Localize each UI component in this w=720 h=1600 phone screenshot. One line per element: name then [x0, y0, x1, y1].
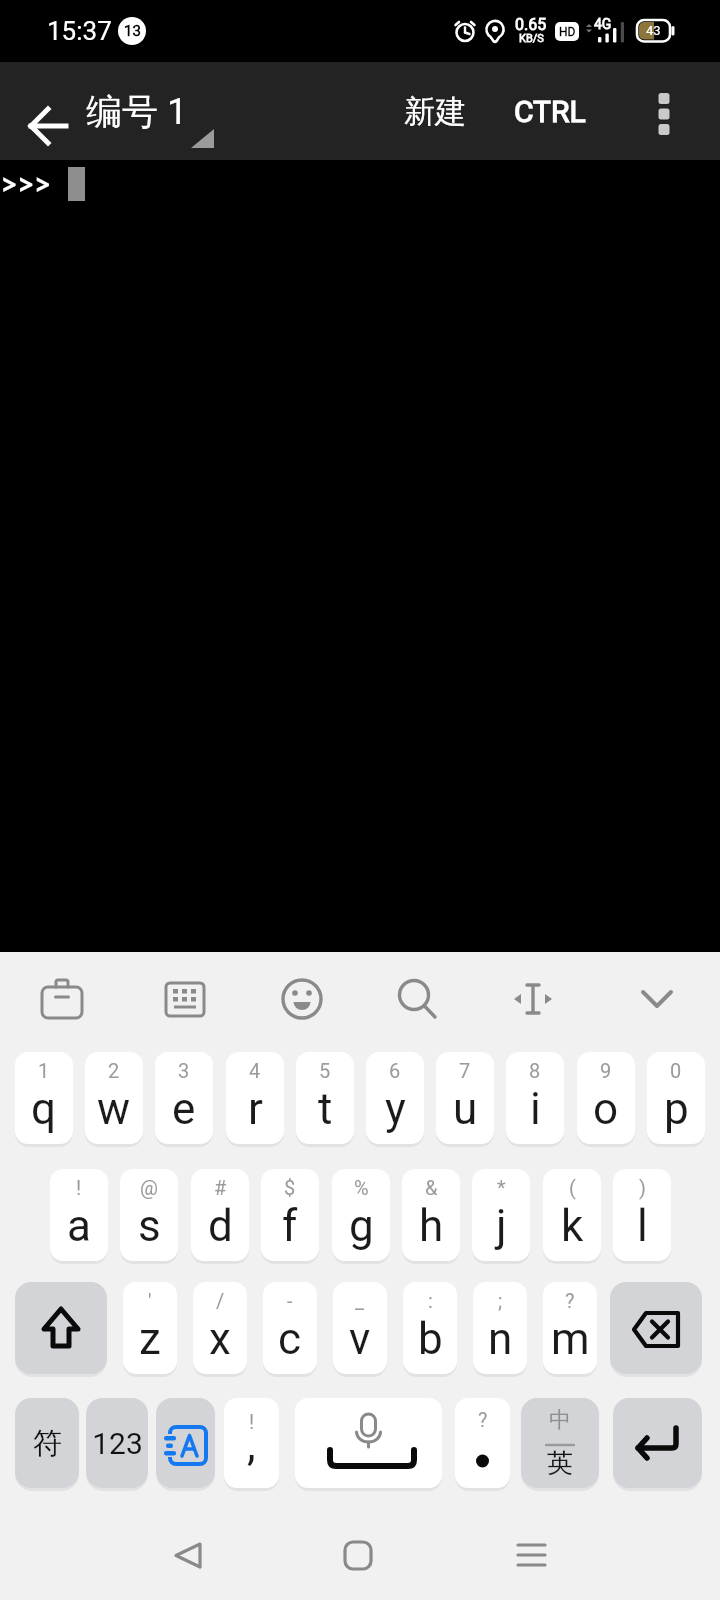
button[interactable]: [328, 1525, 388, 1585]
staticText: (: [569, 1176, 576, 1199]
staticText: $: [284, 1176, 296, 1199]
button[interactable]: 123: [86, 1398, 148, 1488]
staticText: h: [419, 1200, 444, 1252]
staticText: _: [355, 1289, 365, 1312]
staticText: CTRL: [514, 94, 586, 129]
staticText: 123: [92, 1426, 143, 1461]
staticText: 13: [124, 22, 141, 40]
button[interactable]: [32, 971, 92, 1027]
staticText: 英: [547, 1447, 573, 1480]
button[interactable]: *: [472, 1169, 530, 1261]
staticText: 2: [108, 1059, 120, 1082]
button[interactable]: 5: [296, 1052, 354, 1144]
staticText: c: [278, 1313, 302, 1365]
staticText: 中: [549, 1406, 571, 1434]
button[interactable]: [272, 971, 332, 1027]
button[interactable]: 1: [15, 1052, 73, 1144]
staticText: u: [453, 1083, 478, 1135]
button[interactable]: 2: [85, 1052, 143, 1144]
button[interactable]: [501, 1525, 561, 1585]
staticText: !: [76, 1176, 82, 1199]
staticText: k: [561, 1200, 584, 1252]
staticText: 0: [670, 1059, 682, 1082]
staticText: y: [385, 1083, 406, 1135]
button[interactable]: 新建: [384, 76, 486, 146]
staticText: ?: [478, 1408, 488, 1431]
button[interactable]: [158, 1525, 218, 1585]
button[interactable]: #: [191, 1169, 249, 1261]
staticText: i: [530, 1083, 541, 1135]
button[interactable]: _: [333, 1282, 387, 1374]
button[interactable]: ?: [543, 1282, 597, 1374]
button[interactable]: &: [402, 1169, 460, 1261]
staticText: t: [318, 1083, 333, 1135]
button[interactable]: 4: [226, 1052, 284, 1144]
button[interactable]: [613, 1398, 702, 1488]
staticText: l: [637, 1200, 648, 1252]
staticText: 新建: [404, 92, 466, 131]
button[interactable]: %: [332, 1169, 390, 1261]
button[interactable]: 8: [506, 1052, 564, 1144]
staticText: -: [287, 1289, 293, 1312]
staticText: n: [488, 1313, 513, 1365]
button[interactable]: [14, 77, 82, 145]
button[interactable]: /: [193, 1282, 247, 1374]
staticText: HD: [559, 25, 576, 39]
staticText: 4G: [594, 16, 612, 32]
button[interactable]: [387, 971, 447, 1027]
staticText: KB/S: [519, 32, 544, 45]
button[interactable]: [15, 1282, 107, 1374]
staticText: p: [664, 1083, 689, 1135]
staticText: v: [349, 1313, 371, 1365]
button[interactable]: 3: [155, 1052, 213, 1144]
staticText: 1: [38, 1059, 50, 1082]
button[interactable]: >>>: [0, 160, 720, 952]
button[interactable]: @: [120, 1169, 178, 1261]
staticText: ): [639, 1176, 646, 1199]
staticText: r: [248, 1083, 263, 1135]
staticText: %: [354, 1176, 369, 1199]
staticText: q: [31, 1083, 57, 1135]
staticText: w: [97, 1083, 131, 1135]
button[interactable]: ?: [455, 1398, 510, 1488]
staticText: d: [208, 1200, 233, 1252]
staticText: o: [593, 1083, 619, 1135]
staticText: a: [67, 1200, 91, 1252]
button[interactable]: ): [613, 1169, 671, 1261]
button[interactable]: [503, 971, 563, 1027]
button[interactable]: !: [224, 1398, 279, 1488]
button[interactable]: 7: [436, 1052, 494, 1144]
button[interactable]: [295, 1398, 442, 1488]
button[interactable]: !: [50, 1169, 108, 1261]
button[interactable]: CTRL: [496, 76, 604, 146]
button[interactable]: ': [123, 1282, 177, 1374]
button[interactable]: [634, 76, 694, 146]
button[interactable]: 9: [577, 1052, 635, 1144]
button[interactable]: [627, 971, 687, 1027]
staticText: ': [148, 1289, 152, 1312]
button[interactable]: $: [261, 1169, 319, 1261]
button[interactable]: (: [543, 1169, 601, 1261]
staticText: 6: [389, 1059, 401, 1082]
button[interactable]: [156, 1398, 215, 1488]
button[interactable]: -: [263, 1282, 317, 1374]
button[interactable]: 0: [647, 1052, 705, 1144]
button[interactable]: 6: [366, 1052, 424, 1144]
button[interactable]: 中: [521, 1398, 599, 1488]
staticText: /: [216, 1289, 225, 1312]
staticText: 符: [33, 1425, 62, 1462]
staticText: @: [140, 1176, 158, 1199]
staticText: 7: [459, 1059, 471, 1082]
button[interactable]: [155, 971, 215, 1027]
staticText: ?: [565, 1289, 575, 1312]
staticText: :: [428, 1289, 433, 1312]
button[interactable]: :: [403, 1282, 457, 1374]
staticText: 5: [319, 1059, 331, 1082]
button[interactable]: 符: [15, 1398, 79, 1488]
staticText: e: [172, 1083, 196, 1135]
button[interactable]: 编号 1: [84, 82, 218, 152]
staticText: 4: [249, 1059, 261, 1082]
staticText: ;: [498, 1289, 503, 1312]
button[interactable]: [610, 1282, 702, 1374]
button[interactable]: ;: [473, 1282, 527, 1374]
